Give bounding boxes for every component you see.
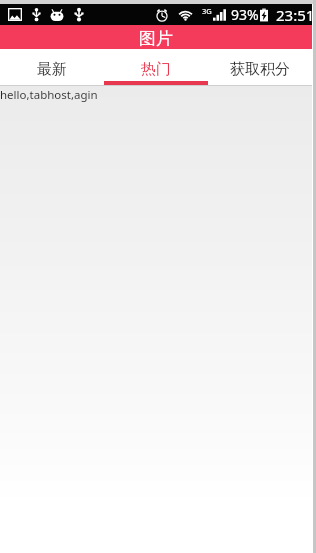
staticText: hello,tabhost,agin	[0, 87, 98, 103]
button[interactable]: 最新	[0, 49, 104, 85]
button[interactable]: 热门	[104, 49, 208, 85]
staticText: 最新	[37, 60, 67, 79]
staticText: 3G	[202, 6, 212, 16]
staticText: 获取积分	[230, 60, 290, 79]
button[interactable]: 获取积分	[208, 49, 312, 85]
staticText: 热门	[141, 60, 171, 79]
staticText: 图片	[139, 28, 173, 49]
staticText: 23:51	[276, 5, 315, 25]
staticText: 93%	[231, 5, 259, 24]
